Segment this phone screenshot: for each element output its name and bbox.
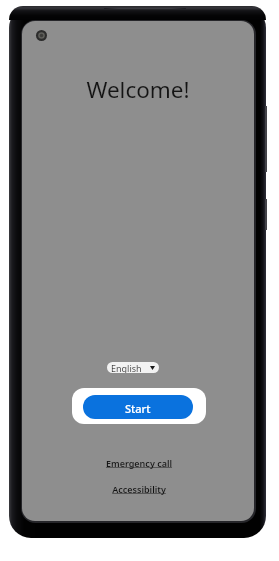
button[interactable]: Accessibility (23, 483, 254, 495)
staticText: English (111, 362, 142, 373)
button[interactable]: English (107, 362, 159, 373)
staticText: Welcome! (22, 74, 254, 105)
button[interactable]: Start (83, 395, 193, 419)
staticText: Start (125, 401, 151, 416)
other: Front camera (36, 30, 47, 41)
button[interactable]: Emergency call (23, 457, 254, 469)
